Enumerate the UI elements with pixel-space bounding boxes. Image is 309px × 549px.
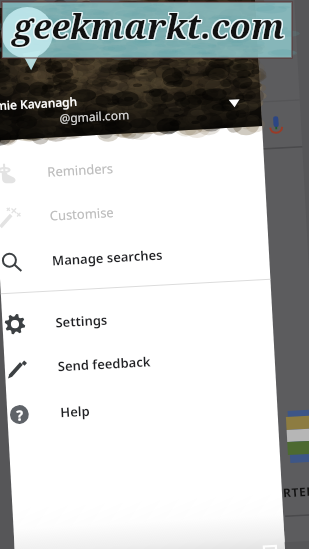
staticText: geekmarkt.com [14,2,286,49]
staticText: Reminders [47,159,114,181]
staticText: geekmarkt.com [14,1,286,48]
staticText: geekmarkt.com [13,1,285,48]
staticText: geekmarkt.com [14,3,286,50]
button[interactable]: Customise [0,181,267,240]
staticText: ? [16,405,24,425]
other: Switch account [229,99,240,111]
button[interactable]: Send feedback [4,332,276,391]
button[interactable]: amie Kavanagh [0,0,262,141]
staticText: @gmail.com [59,106,130,126]
staticText: geekmarkt.com [12,2,284,49]
staticText: geekmarkt.com [13,2,285,49]
staticText: Help [60,402,91,421]
button[interactable]: Reminders [0,137,265,196]
staticText: geekmarkt.com [13,3,285,50]
button[interactable]: ? [6,378,278,437]
staticText: RTED [282,483,309,500]
staticText: geekmarkt.com [12,1,284,48]
staticText: Manage searches [52,245,163,269]
staticText: Customise [49,203,115,225]
staticText: Settings [55,311,108,331]
button[interactable]: Settings [1,288,273,347]
staticText: geekmarkt.com [12,3,284,50]
staticText: Send feedback [57,352,151,375]
button[interactable]: Manage searches [0,226,270,285]
staticText: amie Kavanagh [0,93,78,114]
